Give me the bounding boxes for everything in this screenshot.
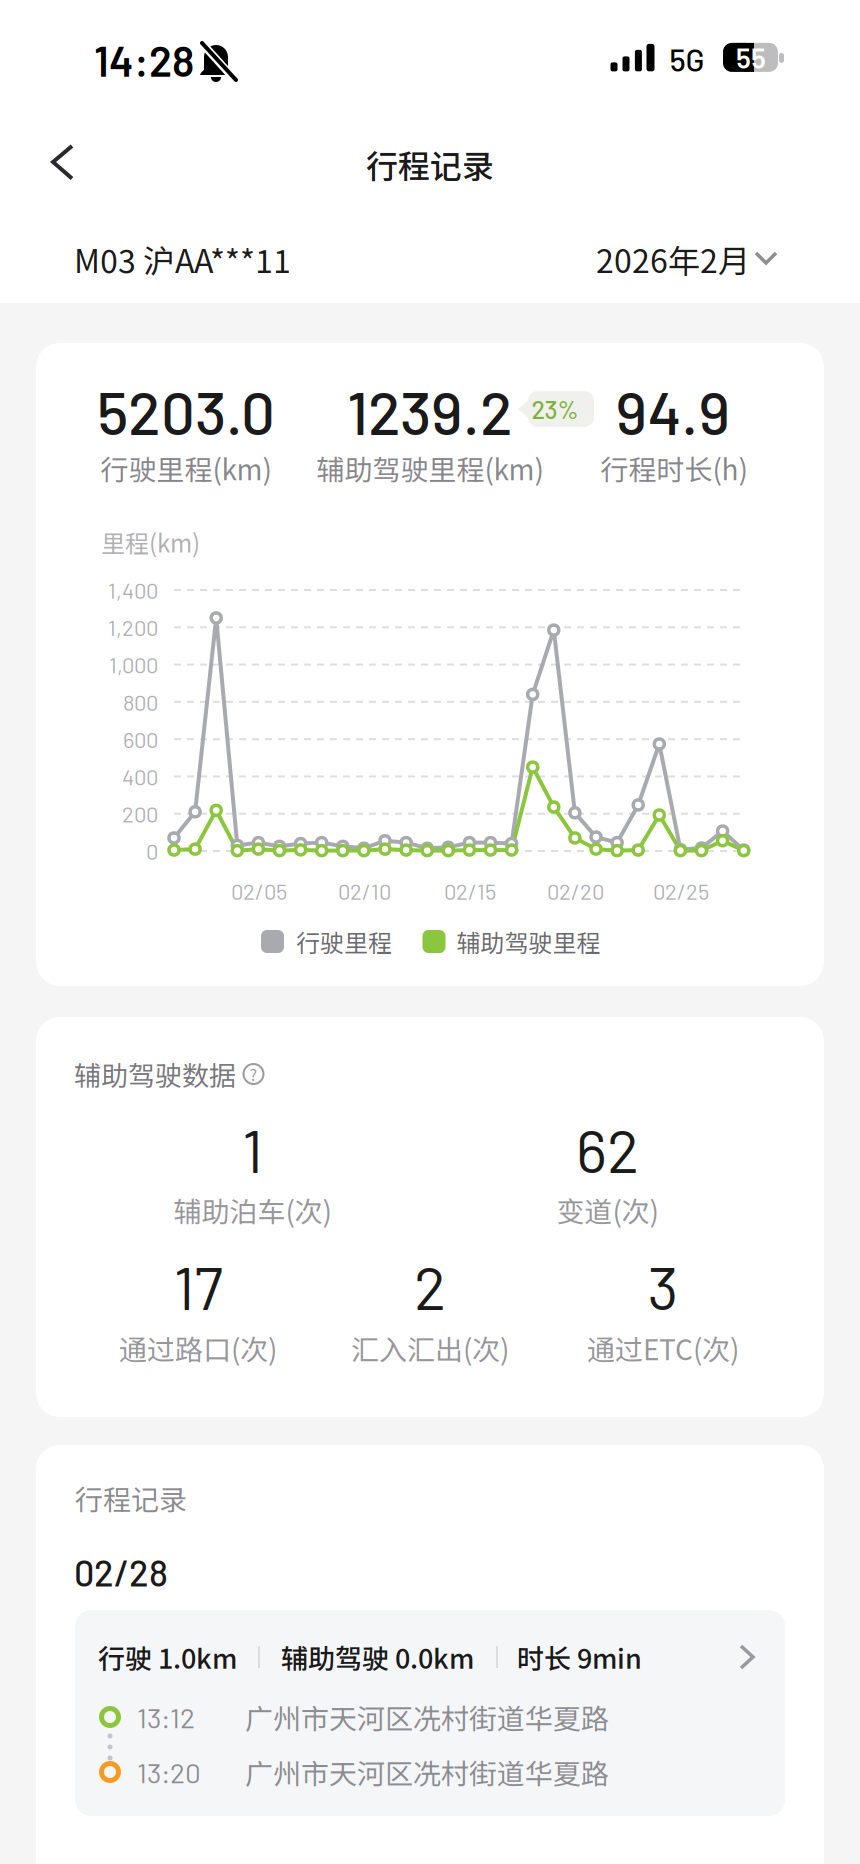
staticText: 200 (122, 800, 158, 827)
staticText: 13:12 (137, 1700, 195, 1734)
staticText: 5203.0 (97, 375, 275, 447)
staticText: 400 (122, 763, 158, 790)
staticText: 行驶里程(km) (100, 448, 271, 488)
staticText: 1239.2 (347, 375, 513, 447)
staticText: 1,000 (109, 651, 158, 678)
staticText: 时长 9min (517, 1637, 642, 1677)
staticText: 55 (736, 41, 766, 74)
staticText: 行驶里程 (296, 924, 392, 959)
staticText: 行程记录 (75, 1478, 187, 1518)
staticText: 3 (647, 1250, 678, 1322)
staticText: 02/05 (231, 878, 287, 904)
staticText: 变道(次) (556, 1190, 658, 1230)
staticText: ? (249, 1062, 257, 1086)
staticText: 02/20 (547, 878, 604, 904)
staticText: 5G (669, 40, 704, 78)
staticText: 辅助驾驶里程 (456, 924, 600, 959)
staticText: 辅助泊车(次) (173, 1190, 331, 1230)
staticText: 行程时长(h) (600, 448, 747, 488)
staticText: 2 (414, 1250, 446, 1322)
staticText: 14:28 (94, 35, 194, 85)
staticText: 广州市天河区冼村街道华夏路 (245, 1697, 609, 1737)
staticText: 1 (242, 1113, 263, 1185)
staticText: 62 (576, 1113, 639, 1185)
staticText: 辅助驾驶 0.0km (281, 1637, 474, 1677)
staticText: 94.9 (615, 375, 730, 447)
staticText: 辅助驾驶里程(km) (316, 448, 543, 488)
staticText: 800 (123, 689, 158, 715)
staticText: 23% (531, 394, 578, 424)
staticText: 行程记录 (366, 141, 494, 187)
staticText: 1,400 (108, 577, 158, 603)
staticText: 17 (173, 1250, 222, 1322)
staticText: 13:20 (137, 1755, 201, 1789)
staticText: M03 沪AA***11 (74, 236, 291, 282)
staticText: 02/28 (74, 1550, 168, 1594)
staticText: 行驶 1.0km (98, 1637, 237, 1677)
staticText: 里程(km) (101, 525, 200, 559)
staticText: 汇入汇出(次) (351, 1328, 509, 1368)
staticText: 2026年2月 (596, 236, 750, 282)
staticText: 02/15 (444, 878, 496, 904)
staticText: 600 (123, 726, 158, 752)
staticText: 02/25 (653, 878, 709, 904)
staticText: 02/10 (338, 878, 391, 904)
staticText: 1,200 (108, 614, 158, 640)
staticText: 通过路口(次) (119, 1328, 277, 1368)
staticText: 辅助驾驶数据 (74, 1054, 236, 1094)
staticText: 通过ETC(次) (587, 1328, 739, 1368)
staticText: 广州市天河区冼村街道华夏路 (245, 1752, 609, 1792)
staticText: 0 (146, 838, 158, 864)
